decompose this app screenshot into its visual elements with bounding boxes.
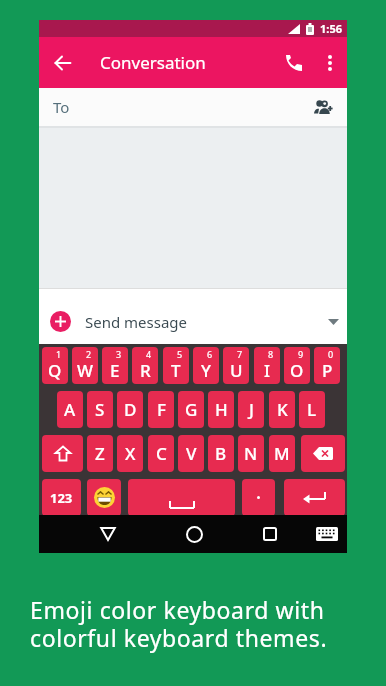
button[interactable]: A — [57, 391, 83, 428]
button[interactable] — [186, 526, 203, 543]
staticText: X — [125, 442, 136, 465]
button[interactable]: M — [269, 435, 295, 472]
staticText: Q — [48, 359, 62, 382]
staticText: V — [186, 442, 197, 465]
button[interactable]: E — [102, 347, 128, 384]
staticText: I — [264, 359, 271, 382]
button[interactable]: Q — [42, 347, 68, 384]
staticText: 5 — [177, 348, 183, 360]
button[interactable]: To — [53, 88, 333, 126]
button[interactable] — [128, 479, 235, 516]
button[interactable] — [327, 54, 333, 72]
button[interactable]: W — [72, 347, 98, 384]
staticText: B — [215, 442, 227, 465]
staticText: W — [77, 359, 93, 382]
staticText: 3 — [116, 348, 122, 360]
staticText: T — [171, 359, 181, 382]
staticText: D — [124, 398, 137, 421]
staticText: E — [110, 359, 120, 382]
staticText: K — [277, 398, 288, 421]
button[interactable] — [87, 479, 121, 516]
button[interactable]: V — [178, 435, 204, 472]
staticText: P — [322, 359, 333, 382]
staticText: Send message — [85, 312, 188, 332]
staticText: To — [53, 97, 70, 117]
button[interactable]: O — [284, 347, 310, 384]
staticText: G — [185, 398, 198, 421]
staticText: 0 — [328, 348, 334, 360]
button[interactable]: X — [117, 435, 143, 472]
button[interactable] — [263, 527, 277, 541]
button[interactable]: L — [299, 391, 325, 428]
staticText: 2 — [86, 348, 92, 360]
button[interactable]: F — [148, 391, 174, 428]
button[interactable]: G — [178, 391, 204, 428]
button[interactable]: 123 — [42, 479, 81, 516]
staticText: 123 — [50, 489, 73, 507]
staticText: Z — [95, 442, 105, 465]
staticText: F — [157, 398, 166, 421]
staticText: R — [140, 359, 151, 382]
button[interactable]: U — [223, 347, 249, 384]
button[interactable] — [242, 479, 275, 516]
button[interactable]: J — [238, 391, 264, 428]
staticText: N — [244, 442, 258, 465]
staticText: C — [156, 442, 167, 465]
button[interactable] — [285, 54, 303, 72]
staticText: J — [249, 398, 254, 421]
button[interactable]: N — [238, 435, 264, 472]
staticText: Emoji color keyboard with colorful keybo… — [30, 594, 328, 653]
button[interactable] — [284, 479, 345, 516]
staticText: O — [290, 359, 304, 382]
button[interactable]: S — [87, 391, 113, 428]
staticText: Y — [201, 359, 211, 382]
staticText: U — [230, 359, 243, 382]
button[interactable] — [301, 435, 345, 472]
staticText: A — [64, 398, 76, 421]
staticText: 7 — [237, 348, 243, 360]
staticText: L — [307, 398, 317, 421]
button[interactable]: B — [208, 435, 234, 472]
staticText: 6 — [207, 348, 213, 360]
staticText: 1:56 — [320, 21, 342, 36]
button[interactable]: K — [269, 391, 295, 428]
button[interactable]: P — [314, 347, 340, 384]
button[interactable]: I — [254, 347, 280, 384]
button[interactable]: Z — [87, 435, 113, 472]
staticText: Conversation — [100, 51, 206, 74]
button[interactable] — [55, 55, 71, 71]
button[interactable] — [42, 435, 83, 472]
staticText: H — [215, 398, 228, 421]
button[interactable]: Y — [193, 347, 219, 384]
button[interactable]: R — [132, 347, 158, 384]
button[interactable]: C — [148, 435, 174, 472]
button[interactable]: Send message — [50, 299, 339, 344]
button[interactable]: H — [208, 391, 234, 428]
button[interactable] — [100, 527, 116, 541]
staticText: M — [274, 442, 290, 465]
button[interactable] — [316, 527, 338, 541]
staticText: S — [95, 398, 105, 421]
staticText: 8 — [268, 348, 274, 360]
button[interactable]: D — [117, 391, 143, 428]
button[interactable]: T — [163, 347, 189, 384]
staticText: 9 — [298, 348, 304, 360]
staticText: 4 — [146, 348, 152, 360]
staticText: 1 — [56, 348, 62, 360]
